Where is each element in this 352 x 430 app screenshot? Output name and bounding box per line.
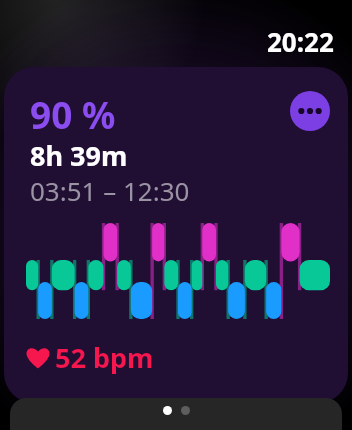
button[interactable] <box>26 223 330 319</box>
staticText: 03:51 – 12:30 <box>30 173 190 208</box>
staticText: 90 % <box>30 89 116 139</box>
staticText: 20:22 <box>267 24 334 59</box>
staticText: 52 bpm <box>55 339 154 376</box>
button[interactable]: 52 bpm <box>26 339 154 376</box>
button[interactable]: 90 % <box>4 67 348 403</box>
staticText: 8h 39m <box>30 137 128 174</box>
button[interactable]: More options <box>290 91 330 131</box>
